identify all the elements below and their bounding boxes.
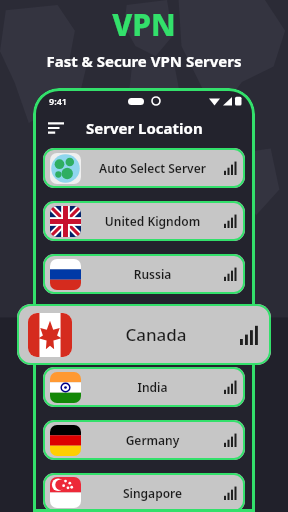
staticText: VPN <box>112 4 176 45</box>
staticText: United Kigndom <box>81 213 224 229</box>
staticText: Server Location <box>86 118 203 138</box>
button[interactable]: Russia <box>43 254 245 294</box>
button[interactable]: Canada <box>17 304 271 365</box>
button[interactable]: Singapore <box>43 473 245 512</box>
staticText: Auto Select Server <box>81 160 224 176</box>
staticText: 9:41 <box>49 95 67 107</box>
staticText: Germany <box>81 432 224 448</box>
button[interactable]: Germany <box>43 420 245 460</box>
staticText: Fast & Secure VPN Servers <box>46 51 242 71</box>
button[interactable]: India <box>43 367 245 407</box>
staticText: Canada <box>72 323 240 346</box>
button[interactable]: United Kigndom <box>43 201 245 241</box>
staticText: India <box>81 379 224 395</box>
button[interactable]: Auto Select Server <box>43 148 245 188</box>
staticText: Singapore <box>81 485 224 501</box>
button[interactable]: Menu <box>43 115 69 141</box>
staticText: Russia <box>81 266 224 282</box>
